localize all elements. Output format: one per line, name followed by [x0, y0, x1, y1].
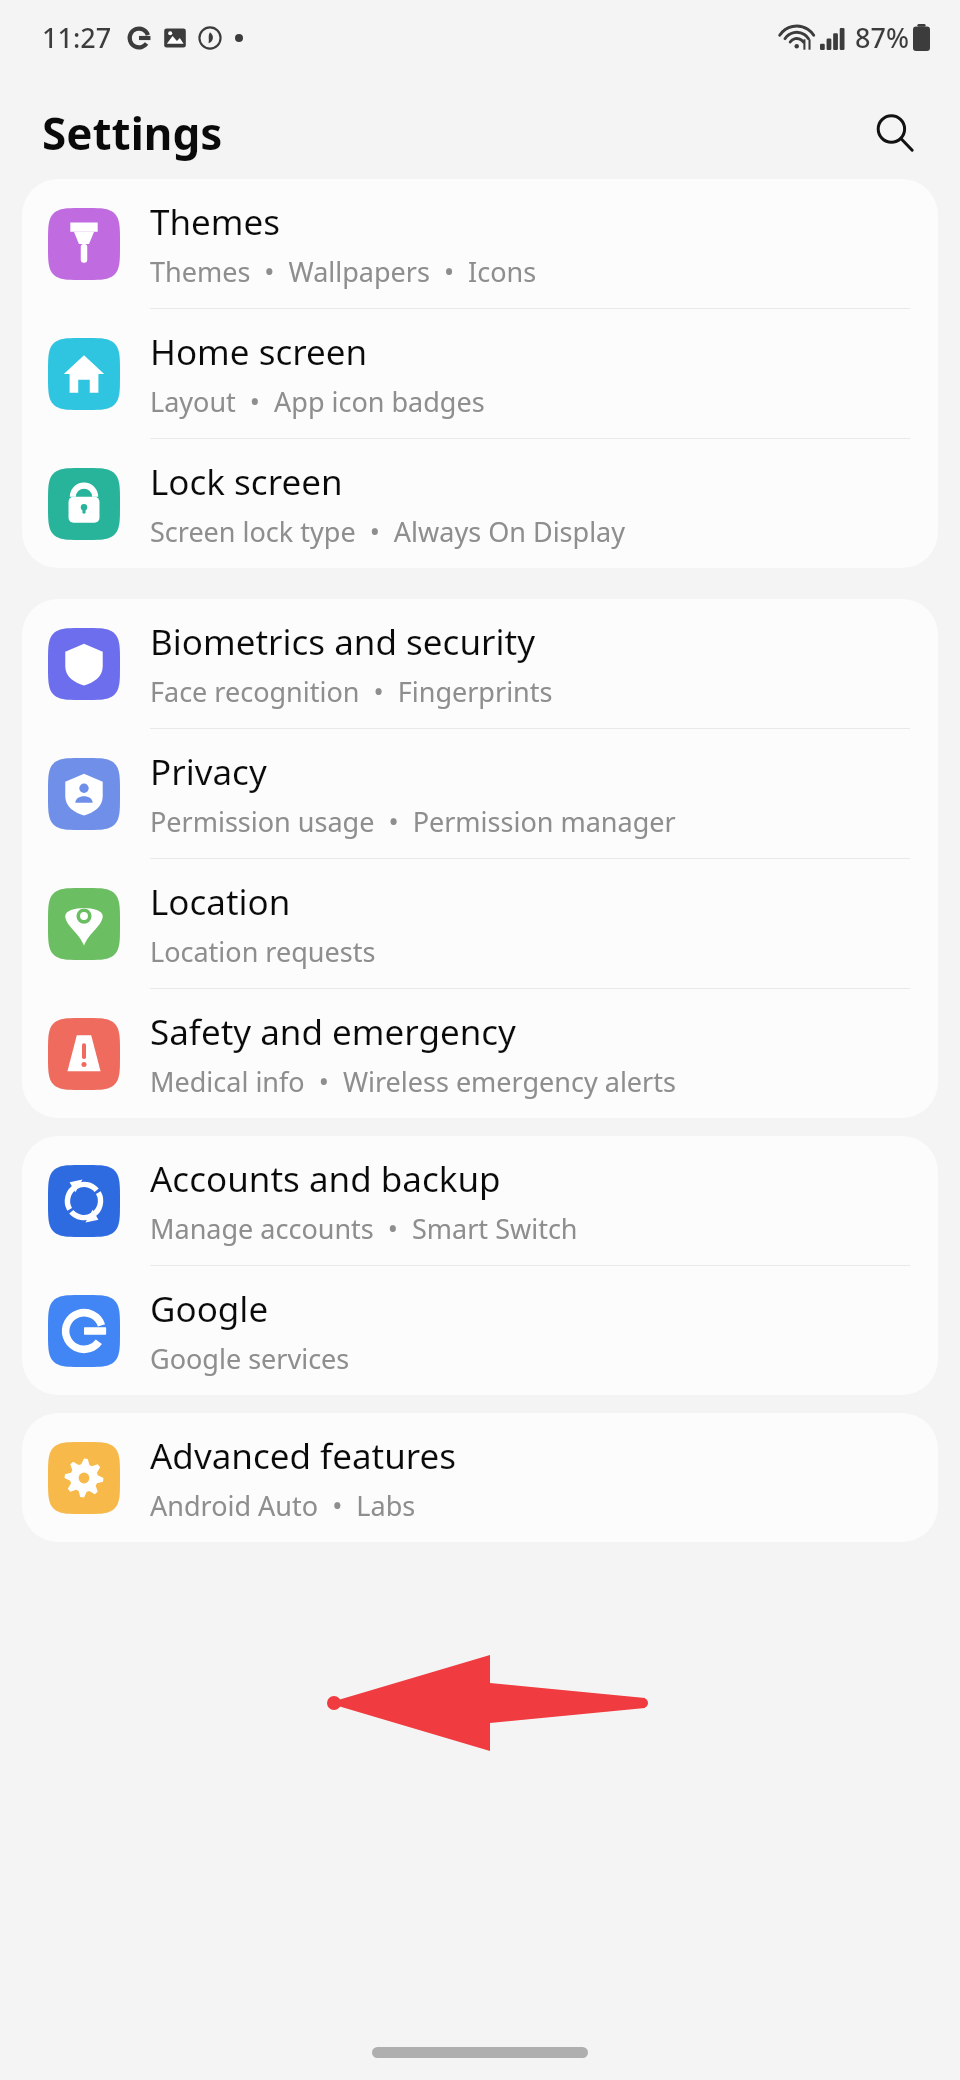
staticText: Biometrics and security — [150, 618, 536, 666]
button[interactable]: Home — [372, 2047, 588, 2058]
button[interactable]: Safety and emergency — [22, 989, 938, 1118]
staticText: Location requests — [150, 933, 376, 970]
staticText: Advanced features — [150, 1432, 457, 1480]
staticText: 87% — [855, 19, 909, 56]
staticText: Permission usage • Permission manager — [150, 803, 676, 840]
staticText: Screen lock type • Always On Display — [150, 513, 626, 550]
button[interactable]: Search — [856, 94, 934, 172]
staticText: Lock screen — [150, 458, 343, 506]
button[interactable]: Biometrics and security — [22, 599, 938, 728]
staticText: Google services — [150, 1340, 350, 1377]
staticText: Themes — [150, 198, 281, 246]
staticText: Home screen — [150, 328, 368, 376]
button[interactable]: Advanced features — [22, 1413, 938, 1542]
staticText: Safety and emergency — [150, 1008, 516, 1056]
staticText: Location — [150, 878, 291, 926]
staticText: Medical info • Wireless emergency alerts — [150, 1063, 676, 1100]
button[interactable]: Google — [22, 1266, 938, 1395]
staticText: Privacy — [150, 748, 267, 796]
button[interactable]: Lock screen — [22, 439, 938, 568]
staticText: Face recognition • Fingerprints — [150, 673, 553, 710]
button[interactable]: Themes — [22, 179, 938, 308]
button[interactable]: Accounts and backup — [22, 1136, 938, 1265]
staticText: Themes • Wallpapers • Icons — [150, 253, 537, 290]
button[interactable]: Privacy — [22, 729, 938, 858]
staticText: Settings — [42, 103, 223, 163]
staticText: Google — [150, 1285, 269, 1333]
staticText: Accounts and backup — [150, 1155, 501, 1203]
staticText: Manage accounts • Smart Switch — [150, 1210, 578, 1247]
staticText: Android Auto • Labs — [150, 1487, 416, 1524]
staticText: 11:27 — [42, 19, 112, 56]
staticText: Layout • App icon badges — [150, 383, 485, 420]
button[interactable]: Home screen — [22, 309, 938, 438]
button[interactable]: Location — [22, 859, 938, 988]
